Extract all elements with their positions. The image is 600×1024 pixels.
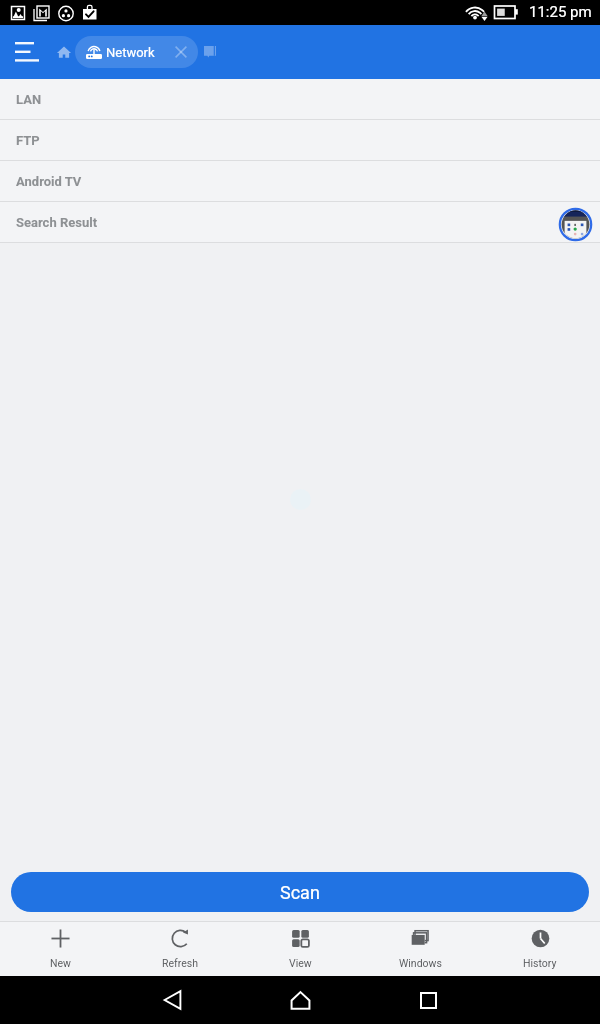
button[interactable]: Android TV [0,161,600,201]
button[interactable]: Home [52,25,75,79]
button[interactable]: View [240,922,360,976]
button[interactable]: New tab [198,25,221,79]
staticText: Android TV [16,174,82,189]
staticText: New [50,957,71,969]
staticText: View [289,957,312,969]
button[interactable]: Assistant [559,208,592,241]
staticText: Scan [280,882,320,903]
button[interactable]: Scan [11,872,589,912]
button[interactable]: FTP [0,120,600,160]
button[interactable]: Menu [0,25,52,79]
button[interactable]: History [480,922,600,976]
button[interactable]: Home [272,976,328,1024]
button[interactable]: Windows [360,922,480,976]
button[interactable]: New [0,922,120,976]
staticText: Refresh [162,957,198,969]
button[interactable]: Network [75,36,198,68]
staticText: Search Result [16,215,98,230]
button[interactable]: Back [144,976,200,1024]
button[interactable]: Refresh [120,922,240,976]
button[interactable]: Search Result [0,202,600,242]
staticText: LAN [16,92,42,107]
staticText: FTP [16,133,40,148]
button[interactable]: Close tab [155,36,198,68]
staticText: History [523,957,557,969]
button[interactable]: LAN [0,79,600,119]
staticText: Network [106,45,155,60]
button[interactable]: Recents [400,976,456,1024]
staticText: 11:25 pm [529,3,592,21]
staticText: Windows [399,957,442,969]
